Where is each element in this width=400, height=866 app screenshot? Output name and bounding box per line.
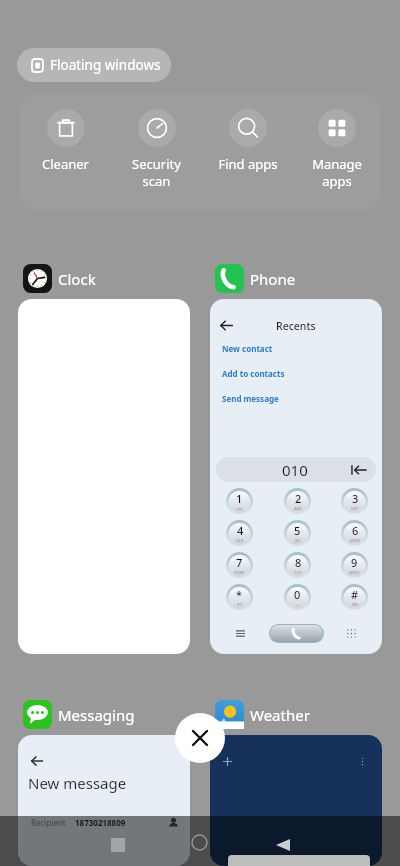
staticText: 9: [351, 555, 358, 570]
staticText: 1: [236, 491, 243, 506]
button[interactable]: 1: [226, 488, 253, 515]
staticText: Messaging: [58, 705, 135, 725]
button[interactable]: Home: [191, 834, 208, 851]
staticText: 3: [352, 491, 359, 506]
staticText: WXYZ: [349, 570, 360, 575]
button[interactable]: New contact: [222, 343, 273, 354]
staticText: Recipient: [31, 817, 66, 828]
button[interactable]: 4: [226, 520, 253, 547]
button[interactable]: Add to contacts: [222, 368, 285, 379]
button[interactable]: 5: [284, 520, 311, 547]
staticText: 6: [352, 523, 359, 538]
button[interactable]: Send message: [222, 393, 279, 404]
button[interactable]: 0: [284, 584, 311, 611]
staticText: 0: [294, 587, 301, 602]
staticText: Cleaner: [42, 155, 89, 173]
staticText: #: [351, 587, 359, 602]
button[interactable]: Call: [270, 625, 323, 642]
button[interactable]: #: [341, 584, 368, 611]
staticText: Clock: [58, 269, 96, 289]
staticText: 4: [237, 523, 244, 538]
button[interactable]: Messaging: [23, 700, 135, 729]
button[interactable]: Security scan: [111, 109, 202, 190]
staticText: 7: [236, 555, 243, 570]
button[interactable]: Weather: [215, 700, 310, 729]
button[interactable]: 2: [284, 488, 311, 515]
staticText: *: [236, 587, 243, 602]
staticText: TUV: [294, 570, 302, 575]
button[interactable]: Add city: [210, 735, 382, 866]
button[interactable]: Back: [31, 755, 43, 767]
staticText: PQRS: [234, 570, 245, 575]
staticText: +: [296, 602, 299, 607]
staticText: GHI: [236, 538, 244, 543]
button[interactable]: Call log: [236, 629, 245, 638]
button[interactable]: Add city: [223, 757, 232, 766]
button[interactable]: Manage apps: [293, 109, 380, 190]
button[interactable]: 6: [341, 520, 368, 547]
button[interactable]: 9: [341, 552, 368, 579]
staticText: New message: [28, 773, 127, 793]
button[interactable]: 010: [216, 457, 376, 482]
staticText: JKL: [295, 538, 301, 543]
staticText: 8: [295, 555, 302, 570]
button[interactable]: Phone: [215, 264, 296, 293]
staticText: Floating windows: [50, 56, 161, 74]
staticText: (W): [352, 602, 359, 607]
button[interactable]: Keypad: [347, 629, 356, 638]
staticText: 2: [295, 491, 302, 506]
staticText: ABC: [294, 506, 302, 511]
button[interactable]: *: [226, 584, 253, 611]
staticText: Phone: [250, 269, 296, 289]
staticText: oo: [237, 506, 242, 511]
staticText: Recents: [276, 319, 316, 333]
button[interactable]: Floating windows: [17, 48, 171, 82]
button[interactable]: Back: [276, 838, 290, 852]
staticText: DEF: [351, 506, 359, 511]
button[interactable]: [18, 299, 190, 654]
staticText: Find apps: [218, 155, 278, 173]
staticText: Weather: [250, 705, 310, 725]
button[interactable]: Back: [220, 319, 233, 332]
staticText: MNO: [350, 538, 360, 543]
staticText: Manage apps: [312, 155, 362, 190]
staticText: 5: [294, 523, 301, 538]
button[interactable]: Back: [210, 299, 382, 654]
button[interactable]: More options: [358, 757, 367, 766]
button[interactable]: Cleaner: [20, 109, 111, 173]
staticText: 18730218809: [75, 817, 126, 828]
staticText: 010: [282, 460, 308, 480]
staticText: (P): [237, 602, 242, 607]
button[interactable]: Backspace: [351, 462, 367, 478]
button[interactable]: 7: [226, 552, 253, 579]
button[interactable]: Clock: [23, 264, 96, 293]
button[interactable]: Back: [18, 735, 190, 866]
button[interactable]: 3: [341, 488, 368, 515]
staticText: Security scan: [132, 155, 181, 190]
button[interactable]: Close all: [175, 713, 225, 763]
button[interactable]: 8: [284, 552, 311, 579]
button[interactable]: Find apps: [202, 109, 293, 173]
